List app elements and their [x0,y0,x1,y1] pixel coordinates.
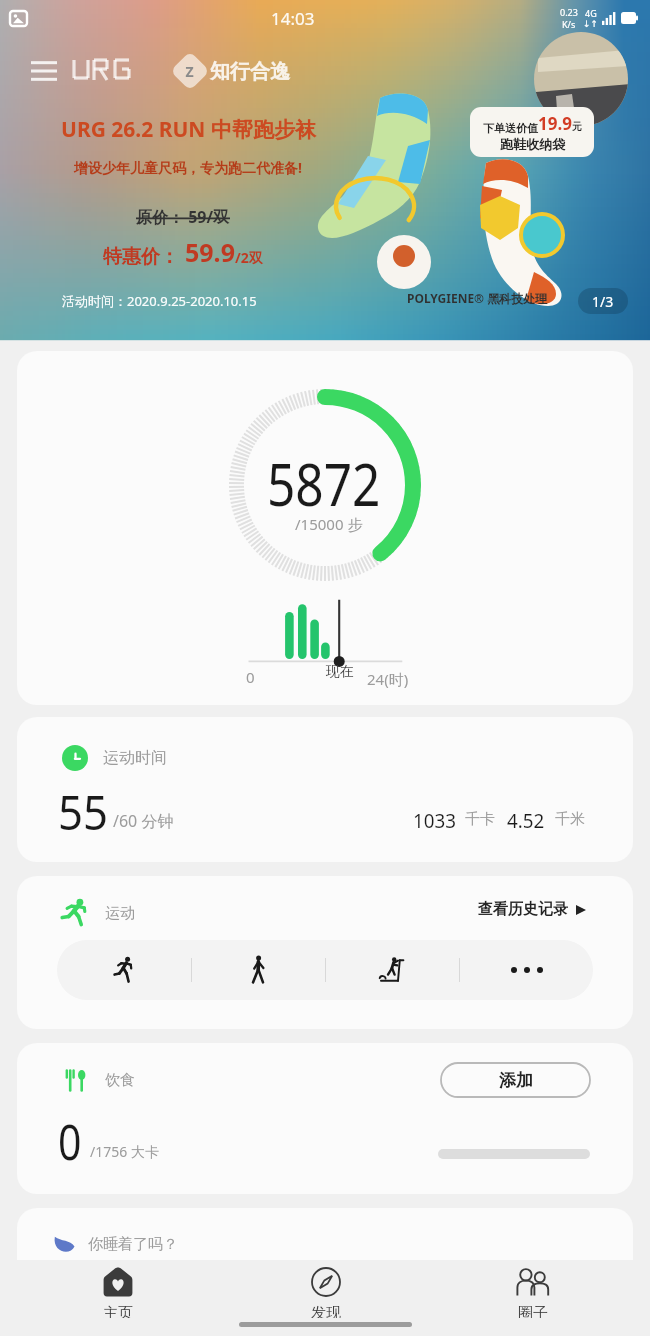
button[interactable]: 5872 [17,351,633,705]
button[interactable]: 饮食 [17,1043,633,1194]
staticText: 下单送价值 [483,121,538,135]
button[interactable]: 圈子 [429,1260,636,1318]
staticText: 千卡 [465,810,495,829]
staticText: 19.9 [538,112,572,135]
button[interactable]: 14:03 [0,0,650,339]
button[interactable]: 运动 [17,876,633,1029]
staticText: 千米 [555,810,585,829]
staticText: ↓↑ [583,19,599,29]
staticText: 添加 [499,1070,533,1091]
staticText: 0 [58,1107,82,1175]
staticText: 现在 [326,663,354,681]
button[interactable]: More [460,940,593,1000]
staticText: 运动时间 [103,748,167,768]
staticText: /2双 [235,248,263,267]
staticText: 运动 [105,904,135,923]
staticText: 知行合逸 [210,59,290,84]
staticText: 4.52 [507,807,545,834]
staticText: URG 26.2 RUN 中帮跑步袜 [61,115,316,144]
staticText: 0 [246,667,255,687]
staticText: 1033 [413,807,456,834]
button[interactable]: Menu [26,53,62,89]
staticText: 活动时间：2020.9.25-2020.10.15 [62,292,257,310]
staticText: 59.9 [185,235,235,269]
staticText: 24(时) [367,669,409,689]
staticText: 查看历史记录 [478,900,568,919]
staticText: /15000 步 [295,514,363,534]
staticText: 1/3 [592,292,614,311]
button[interactable]: 下单送价值 [470,107,594,157]
staticText: 跑鞋收纳袋 [500,136,565,152]
staticText: 4G [585,7,597,19]
button[interactable]: Treadmill [326,940,459,1000]
button[interactable]: 你睡着了吗？ [17,1208,633,1298]
staticText: K/s [562,18,576,30]
staticText: 5872 [267,444,381,523]
staticText: /1756 大卡 [90,1142,159,1161]
button[interactable]: 查看历史记录 [478,900,586,919]
staticText: 主页 [103,1304,133,1318]
staticText: 增设少年儿童尺码，专为跑二代准备! [74,158,302,177]
staticText: 发现 [311,1304,341,1318]
staticText: /60 分钟 [113,810,174,832]
staticText: 元 [572,120,582,133]
button[interactable]: 发现 [222,1260,429,1318]
staticText: Z [176,58,204,86]
staticText: 0.23 [560,6,578,18]
button[interactable]: 运动时间 [17,717,633,862]
button[interactable]: Running [57,940,191,1000]
button[interactable]: Walking [192,940,325,1000]
staticText: 特惠价： [103,245,179,269]
staticText: 你睡着了吗？ [88,1235,178,1254]
staticText: 55 [58,779,108,844]
button[interactable]: 主页 [14,1260,222,1318]
staticText: 原价： 59/双 [136,206,230,228]
button[interactable]: 添加 [441,1063,590,1097]
staticText: 饮食 [105,1071,135,1090]
staticText: 14:03 [271,7,315,30]
staticText: 圈子 [518,1304,548,1318]
staticText: POLYGIENE® 黑科技处理 [407,290,548,306]
